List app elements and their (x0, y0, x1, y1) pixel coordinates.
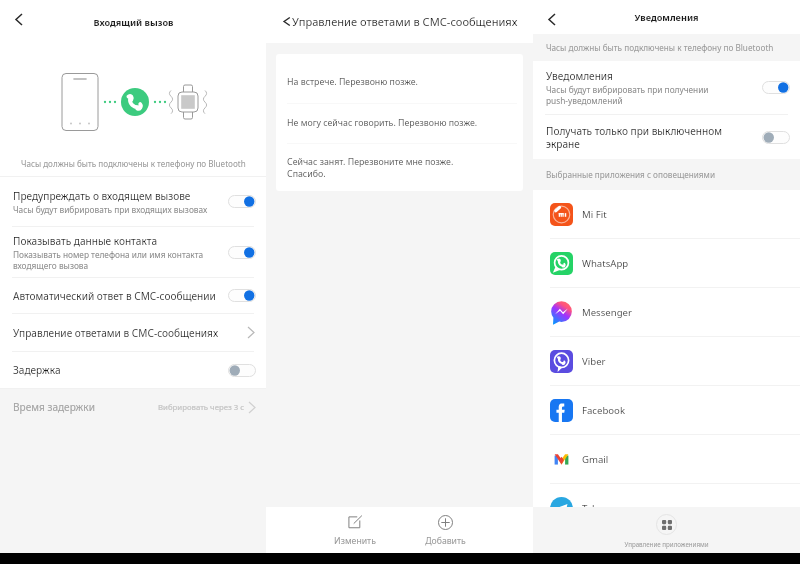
staticText: Gmail (582, 453, 609, 466)
button[interactable]: Telegram (533, 484, 800, 507)
button[interactable]: Facebook (533, 386, 800, 435)
staticText: Viber (582, 355, 606, 368)
button[interactable]: Gmail (533, 435, 800, 484)
button[interactable]: WhatsApp (533, 239, 800, 288)
staticText: Уведомления (546, 69, 613, 83)
staticText: Telegram (582, 502, 624, 507)
staticText: Уведомления (634, 11, 699, 23)
button[interactable]: Получать только при выключенном экране (533, 115, 800, 159)
button[interactable]: Back (7, 8, 30, 31)
staticText: Messenger (582, 306, 632, 319)
staticText: Добавить (425, 535, 466, 547)
button[interactable]: Back (540, 8, 563, 31)
staticText: Показывать номер телефона или имя контак… (13, 249, 204, 271)
button[interactable] (228, 195, 256, 208)
button[interactable]: Показывать данные контакта (0, 227, 266, 277)
button[interactable]: Управление ответами в СМС-сообщениях (281, 14, 518, 29)
button[interactable]: Предупреждать о входящем вызове (0, 177, 266, 226)
button[interactable] (228, 364, 256, 377)
button[interactable] (762, 131, 790, 144)
staticText: Часы должны быть подключены к телефону п… (546, 42, 774, 53)
button[interactable]: На встрече. Перезвоню позже. (276, 54, 523, 104)
staticText: Задержка (13, 363, 61, 377)
staticText: Получать только при выключенном экране (546, 124, 722, 151)
staticText: Часы будут вибрировать при входящих вызо… (13, 204, 208, 215)
button[interactable] (228, 289, 256, 302)
staticText: Показывать данные контакта (13, 234, 158, 248)
staticText: WhatsApp (582, 257, 629, 270)
staticText: Вибрировать через 3 с (158, 402, 245, 413)
staticText: Управление ответами в СМС-сообщениях (292, 14, 518, 29)
button[interactable]: Задержка (0, 352, 266, 388)
button[interactable] (228, 246, 256, 259)
button[interactable]: Автоматический ответ в СМС-сообщении (0, 278, 266, 313)
button[interactable]: Уведомления (533, 61, 800, 114)
staticText: Не могу сейчас говорить. Перезвоню позже… (287, 117, 478, 129)
button[interactable]: Изменить (332, 509, 378, 551)
button[interactable]: Управление ответами в СМС-сообщениях (0, 314, 266, 351)
staticText: Часы будут вибрировать при получении pus… (546, 84, 709, 106)
staticText: Время задержки (13, 400, 95, 414)
staticText: Часы должны быть подключены к телефону п… (21, 158, 246, 169)
staticText: Управление ответами в СМС-сообщениях (13, 326, 248, 340)
staticText: Входящий вызов (93, 16, 174, 28)
staticText: Сейчас занят. Перезвоните мне позже. Спа… (287, 156, 454, 180)
staticText: На встрече. Перезвоню позже. (287, 76, 418, 88)
button[interactable]: Viber (533, 337, 800, 386)
staticText: Автоматический ответ в СМС-сообщении (13, 289, 216, 303)
staticText: Выбранные приложения с оповещениями (546, 169, 715, 180)
button[interactable]: Не могу сейчас говорить. Перезвоню позже… (276, 104, 523, 144)
button[interactable] (762, 81, 790, 94)
staticText: Управление приложениями (624, 540, 709, 548)
button[interactable]: Сейчас занят. Перезвоните мне позже. Спа… (276, 144, 523, 191)
button[interactable]: Добавить (422, 510, 468, 551)
button[interactable]: Время задержки (0, 389, 266, 425)
staticText: Изменить (334, 535, 376, 547)
staticText: Mi Fit (582, 208, 607, 221)
button[interactable]: Messenger (533, 288, 800, 337)
staticText: Facebook (582, 404, 626, 417)
button[interactable]: Mi Fit (533, 190, 800, 239)
button[interactable]: Управление приложениями (533, 507, 800, 553)
staticText: Предупреждать о входящем вызове (13, 189, 191, 203)
